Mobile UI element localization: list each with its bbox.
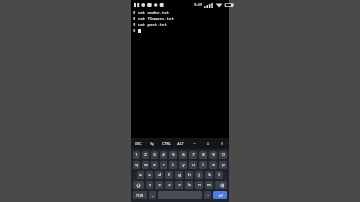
button[interactable]: Backspace [215,181,227,189]
staticText: , [152,192,154,198]
staticText: 3 [153,152,156,158]
staticText: y [182,162,185,168]
button[interactable]: u [189,161,197,169]
button[interactable]: CTRL [159,138,173,149]
staticText: ESC [135,141,142,146]
staticText: n [198,182,201,188]
staticText: 5 [172,152,175,158]
button[interactable]: f [165,171,173,179]
staticText: $ cat post.txt [133,22,167,27]
button[interactable]: ↑ [215,138,229,149]
button[interactable]: x [155,181,163,189]
button[interactable]: ?123 [133,191,147,199]
staticText: ↓ [206,142,210,146]
button[interactable]: s [146,171,153,179]
staticText: u [192,162,195,168]
button[interactable]: 0 [219,151,227,159]
staticText: ALT [177,141,184,146]
button[interactable]: ALT [173,138,187,149]
staticText: 7 [192,152,195,158]
staticText: h [188,172,191,178]
button[interactable]: j [195,171,203,179]
staticText: k [208,172,211,178]
staticText: v [178,182,181,188]
staticText: f [168,172,170,178]
button[interactable]: ↓ [201,138,215,149]
staticText: ?123 [136,193,144,198]
button[interactable]: w [142,161,149,169]
staticText: ↹ [150,142,154,146]
button[interactable]: v [175,181,183,189]
button[interactable]: 1 [133,151,140,159]
staticText: − [193,141,196,146]
button[interactable]: b [185,181,193,189]
button[interactable]: a [137,171,144,179]
button[interactable]: ESC [131,138,145,149]
button[interactable]: t [169,161,177,169]
staticText: . [207,192,209,198]
staticText: t [172,162,174,168]
staticText: l [218,172,220,178]
staticText: b [188,182,191,188]
button[interactable]: 4 [160,151,167,159]
button[interactable]: . [204,191,211,199]
staticText: 6 [182,152,185,158]
staticText: CTRL [162,141,171,146]
button[interactable]: o [209,161,217,169]
staticText: w [144,162,148,168]
staticText: o [212,162,215,168]
staticText: q [135,162,138,168]
staticText: 8 [202,152,205,158]
staticText: $ [133,28,138,33]
button[interactable]: 6 [179,151,187,159]
button[interactable]: n [195,181,203,189]
staticText: d [158,172,161,178]
staticText: 0 [222,152,225,158]
button[interactable]: e [151,161,158,169]
button[interactable]: Shift [133,181,144,189]
staticText: g [178,172,181,178]
staticText: 1 [135,152,138,158]
button[interactable]: z [146,181,153,189]
button[interactable]: l [215,171,223,179]
button[interactable]: i [199,161,207,169]
staticText: $ cat order.txt [133,10,169,15]
staticText: s [148,172,151,178]
staticText: $ cat flowers.txt [133,16,174,21]
button[interactable]: Enter [213,191,227,199]
button[interactable]: h [185,171,193,179]
staticText: 9:49 [194,2,202,7]
staticText: a [139,172,142,178]
staticText: 2 [144,152,147,158]
button[interactable]: 9 [209,151,217,159]
button[interactable]: 3 [151,151,158,159]
button[interactable]: g [175,171,183,179]
button[interactable]: k [205,171,213,179]
staticText: z [149,182,151,188]
button[interactable]: , [149,191,156,199]
button[interactable]: c [165,181,173,189]
staticText: e [153,162,156,168]
button[interactable]: 8 [199,151,207,159]
button[interactable]: m [205,181,213,189]
staticText: p [222,162,225,168]
button[interactable]: q [133,161,140,169]
staticText: j [198,172,200,178]
button[interactable]: d [155,171,163,179]
staticText: c [168,182,171,188]
button[interactable]: 7 [189,151,197,159]
staticText: m [207,182,211,188]
staticText: 9 [212,152,215,158]
staticText: x [158,182,161,188]
staticText: ↑ [220,142,224,146]
staticText: r [163,162,165,168]
button[interactable]: − [187,138,201,149]
button[interactable]: p [219,161,227,169]
button[interactable]: y [179,161,187,169]
button[interactable]: 5 [169,151,177,159]
button[interactable]: 2 [142,151,149,159]
button[interactable]: r [160,161,167,169]
button[interactable]: ↹ [145,138,159,149]
staticText: i [202,162,204,168]
